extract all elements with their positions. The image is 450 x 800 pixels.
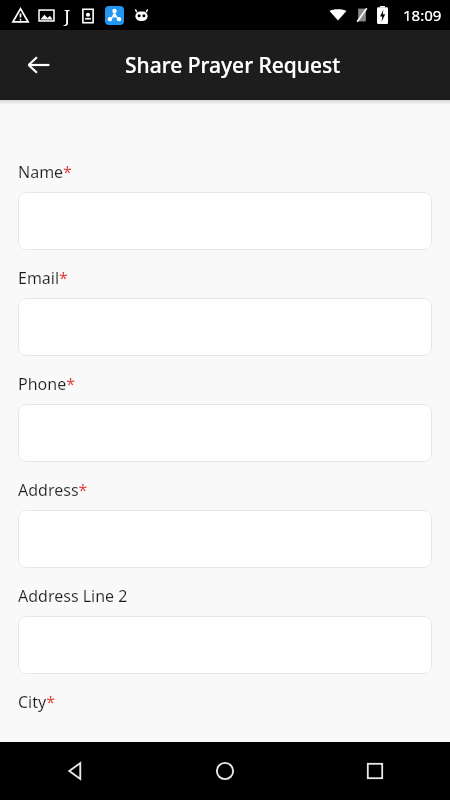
button[interactable]: Recent apps <box>300 742 450 800</box>
staticText: J <box>64 4 71 27</box>
staticText: Share Prayer Request <box>125 51 341 80</box>
button[interactable]: Back <box>16 42 62 88</box>
button[interactable]: Address input field <box>18 510 432 568</box>
staticText: 18:09 <box>403 5 442 25</box>
button[interactable]: Phone input field <box>18 404 432 462</box>
staticText: Email* <box>18 267 68 289</box>
staticText: City* <box>18 691 55 713</box>
staticText: Address Line 2 <box>18 585 128 607</box>
staticText: Phone* <box>18 373 75 395</box>
button[interactable]: Email input field <box>18 298 432 356</box>
staticText: Address* <box>18 479 88 501</box>
staticText: Name* <box>18 161 72 183</box>
button[interactable]: Home <box>150 742 300 800</box>
button[interactable]: Name input field <box>18 192 432 250</box>
button[interactable]: Address Line 2 input field <box>18 616 432 674</box>
button[interactable]: Back <box>0 742 150 800</box>
